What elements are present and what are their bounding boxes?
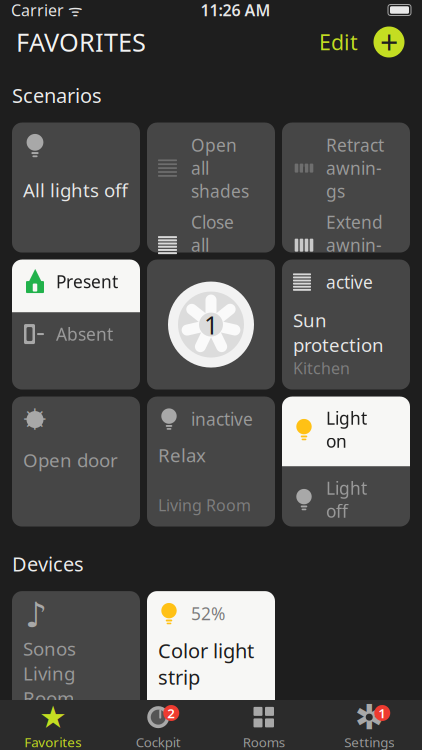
staticText: Open door xyxy=(23,448,118,472)
staticText: Settings xyxy=(344,733,394,750)
staticText: Present xyxy=(56,270,118,293)
staticText: Light on xyxy=(326,407,367,453)
button[interactable]: Add favorite xyxy=(372,25,406,59)
button[interactable]: Retract awnings xyxy=(282,123,410,253)
staticText: Favorites xyxy=(24,733,81,750)
staticText: Living Room xyxy=(158,696,258,719)
button[interactable]: Light on xyxy=(282,397,410,527)
staticText: Living Room xyxy=(293,523,386,544)
staticText: Relax xyxy=(158,443,206,467)
staticText: Devices xyxy=(12,551,84,577)
staticText: Extend awnings xyxy=(326,211,383,280)
staticText: Cockpit xyxy=(136,733,181,750)
button[interactable]: Ventilation level 1 xyxy=(147,260,275,390)
button[interactable]: ▲ xyxy=(12,260,140,390)
staticText: Living Room xyxy=(158,494,251,515)
staticText: Close all shades xyxy=(191,211,249,280)
button[interactable]: 2 xyxy=(105,699,211,750)
staticText: ✱ xyxy=(355,697,384,737)
staticText: Sonos Living Room xyxy=(23,636,76,710)
staticText: Light off xyxy=(326,477,367,523)
staticText: Kitchen xyxy=(293,357,350,378)
button[interactable]: ♪ xyxy=(12,591,140,711)
button[interactable]: active xyxy=(282,260,410,390)
staticText: All lights off xyxy=(23,178,128,202)
staticText: 1 xyxy=(204,308,218,341)
button[interactable]: Edit xyxy=(315,22,362,62)
staticText: Retract awnings xyxy=(326,134,384,203)
staticText: ▲ xyxy=(26,263,43,288)
staticText: Area 1 xyxy=(326,465,379,488)
button[interactable]: All lights off xyxy=(12,123,140,253)
button[interactable]: Rooms xyxy=(211,699,316,750)
staticText: + xyxy=(380,21,398,63)
staticText: Open all shades xyxy=(191,134,249,203)
staticText: ᯤ xyxy=(64,0,83,21)
staticText: Edit xyxy=(319,28,358,56)
staticText: active xyxy=(326,271,373,294)
staticText: Sun protection xyxy=(293,308,384,357)
staticText: Color light strip xyxy=(158,637,254,690)
button[interactable]: inactive xyxy=(147,397,275,527)
staticText: Living Room xyxy=(23,716,116,738)
staticText: inactive xyxy=(191,408,253,431)
button[interactable]: ✱ xyxy=(316,699,422,750)
button[interactable]: ★ xyxy=(0,699,105,750)
staticText: FAVORITES xyxy=(16,25,146,59)
button[interactable]: Open all shades xyxy=(147,123,275,253)
staticText: 2 xyxy=(167,704,175,722)
staticText: Absent xyxy=(56,323,113,346)
button[interactable]: ✳ xyxy=(12,397,140,527)
staticText: 11:26 AM xyxy=(200,0,270,21)
staticText: Rooms xyxy=(243,733,285,750)
staticText: ✳ xyxy=(22,403,47,436)
staticText: Scenarios xyxy=(12,82,102,109)
staticText: Carrier xyxy=(11,0,64,21)
staticText: 52% xyxy=(191,602,225,625)
staticText: 1 xyxy=(378,704,386,722)
staticText: ★ xyxy=(39,700,66,734)
staticText: ♪ xyxy=(25,595,47,635)
button[interactable]: 52% xyxy=(147,591,275,711)
